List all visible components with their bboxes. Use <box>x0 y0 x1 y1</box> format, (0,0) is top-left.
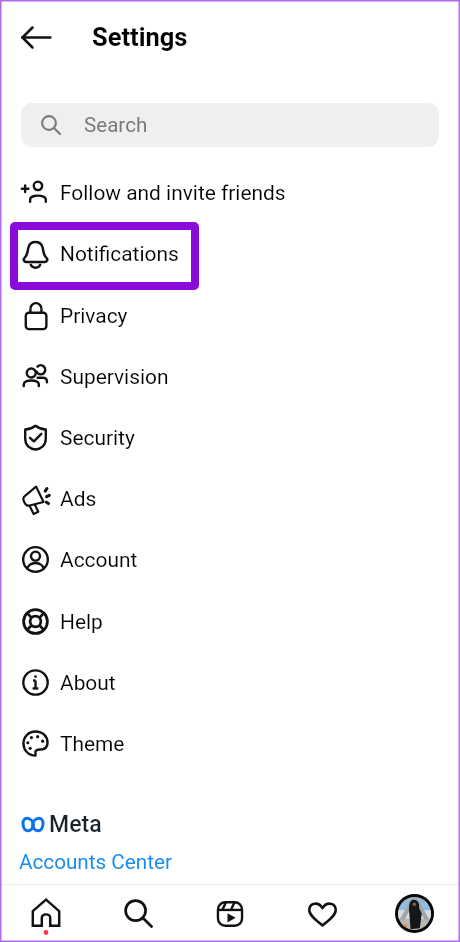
staticText: Accounts Center <box>19 850 172 874</box>
button[interactable]: Privacy <box>0 285 460 346</box>
button[interactable]: Activity <box>276 885 368 942</box>
button[interactable]: Search <box>21 103 439 147</box>
button[interactable]: Reels <box>184 885 276 942</box>
button[interactable]: Follow and invite friends <box>0 162 460 223</box>
button[interactable]: Security <box>0 407 460 468</box>
button[interactable]: Accounts Center <box>19 850 172 874</box>
staticText: Privacy <box>60 304 128 328</box>
staticText: Settings <box>92 22 188 52</box>
staticText: Account <box>60 548 138 572</box>
staticText: Security <box>60 426 135 450</box>
button[interactable]: Account <box>0 529 460 590</box>
staticText: Ads <box>60 487 97 511</box>
button[interactable]: Notifications <box>0 223 460 284</box>
staticText: Search <box>84 113 148 137</box>
button[interactable]: Meta <box>18 806 104 838</box>
button[interactable]: Search <box>92 885 184 942</box>
button[interactable]: Ads <box>0 468 460 529</box>
staticText: About <box>60 671 116 695</box>
staticText: Theme <box>60 732 125 756</box>
staticText: Supervision <box>60 365 169 389</box>
button[interactable]: Back <box>16 17 56 57</box>
staticText: Meta <box>49 811 102 838</box>
button[interactable]: Help <box>0 591 460 652</box>
button[interactable]: About <box>0 652 460 713</box>
button[interactable]: Theme <box>0 713 460 774</box>
button[interactable]: Supervision <box>0 346 460 407</box>
button[interactable]: Profile <box>368 885 460 942</box>
staticText: Follow and invite friends <box>60 181 286 205</box>
staticText: Notifications <box>60 242 179 266</box>
staticText: Help <box>60 610 103 634</box>
button[interactable]: Home <box>0 885 92 942</box>
